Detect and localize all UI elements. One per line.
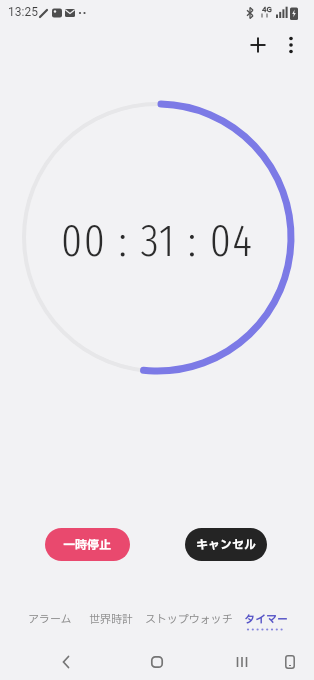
staticText: ストップウォッチ: [145, 611, 233, 628]
button[interactable]: 一時停止: [45, 528, 130, 561]
button[interactable]: [266, 645, 314, 678]
staticText: 一時停止: [63, 536, 112, 554]
button[interactable]: [249, 36, 267, 54]
staticText: タイマー: [244, 611, 288, 628]
button[interactable]: タイマー: [211, 606, 314, 632]
staticText: キャンセル: [196, 536, 256, 554]
button[interactable]: [283, 34, 299, 56]
button[interactable]: ストップウォッチ: [134, 606, 244, 632]
staticText: 世界時計: [89, 611, 133, 628]
staticText: 4G: [262, 5, 272, 14]
button[interactable]: [212, 645, 272, 678]
button[interactable]: アラーム: [0, 606, 105, 632]
staticText: 00 : 31 : 04: [61, 214, 254, 268]
staticText: アラーム: [28, 611, 72, 628]
button[interactable]: キャンセル: [185, 528, 267, 561]
button[interactable]: [127, 645, 187, 678]
button[interactable]: [36, 645, 96, 678]
staticText: 13:25: [8, 5, 38, 19]
button[interactable]: 世界時計: [56, 606, 166, 632]
